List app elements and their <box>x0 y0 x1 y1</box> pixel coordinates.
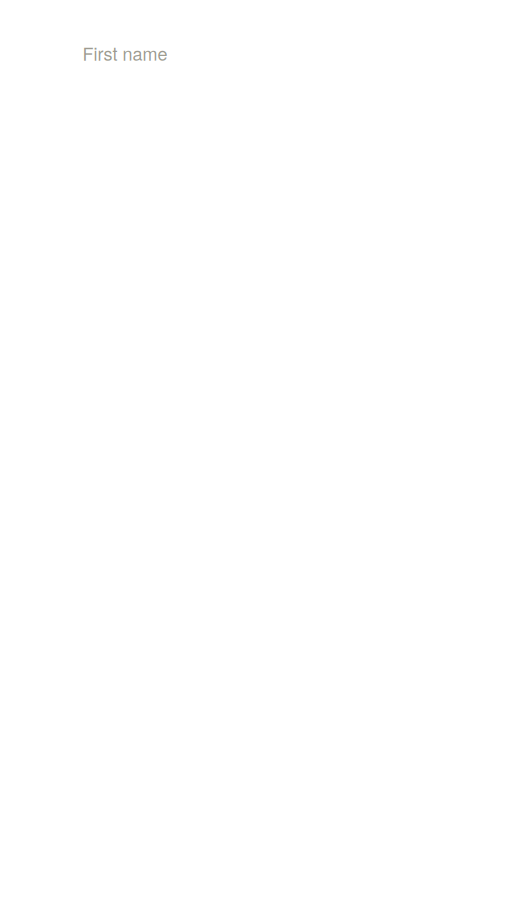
staticText: First name <box>82 40 167 66</box>
textField[interactable]: First name <box>82 40 424 66</box>
